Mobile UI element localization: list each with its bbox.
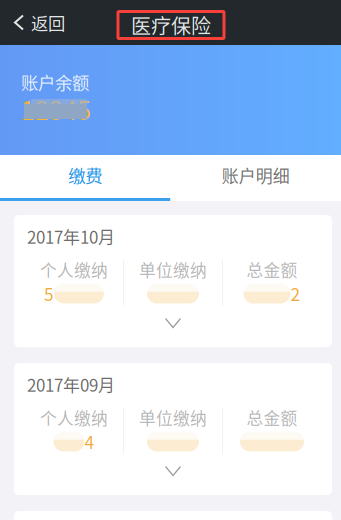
staticText: 单位缴纳	[139, 257, 207, 282]
staticText: 5	[44, 281, 54, 306]
button[interactable]: 账户明细	[170, 155, 341, 201]
staticText: 账户余额	[21, 69, 89, 95]
staticText: 12345	[21, 91, 91, 127]
button[interactable]: 缴费	[0, 155, 170, 201]
staticText: 2017年10月	[27, 224, 115, 248]
staticText: 医疗保险	[131, 10, 211, 39]
button[interactable]: 2017年09月	[14, 363, 332, 495]
staticText: 单位缴纳	[139, 405, 207, 430]
staticText: 2	[290, 281, 300, 306]
staticText: 个人缴纳	[40, 257, 108, 282]
button[interactable]: 2017年10月	[14, 215, 332, 347]
staticText: 账户明细	[222, 163, 290, 187]
staticText: 缴费	[68, 162, 102, 188]
staticText: 2017年09月	[27, 372, 115, 396]
staticText: 总金额	[246, 257, 297, 282]
staticText: 返回	[31, 10, 65, 35]
staticText: 总金额	[246, 405, 297, 430]
button[interactable]: 返回	[0, 2, 65, 43]
staticText: 个人缴纳	[40, 405, 108, 430]
staticText: 4	[84, 429, 94, 454]
